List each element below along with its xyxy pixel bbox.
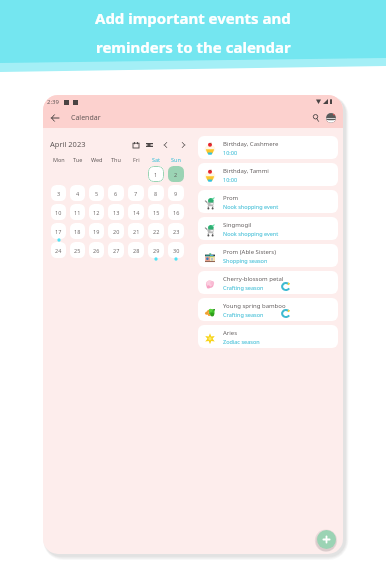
staticText: 3 [57,190,61,197]
staticText: Nook shopping event [223,230,279,237]
button[interactable]: 9 [168,185,184,201]
button[interactable]: 11 [70,204,85,220]
staticText: 30 [173,247,180,254]
staticText: 4 [76,190,80,197]
staticText: 21 [133,228,140,235]
staticText: Nook shopping event [223,203,279,210]
staticText: Calendar [71,113,101,123]
button[interactable]: 12 [89,204,104,220]
staticText: 25 [74,247,81,254]
staticText: Thu [111,156,121,163]
button[interactable]: 16 [168,204,184,220]
staticText: Birthday, Cashmere [223,140,279,148]
staticText: 20 [113,228,120,235]
staticText: 28 [133,247,140,254]
staticText: 22 [153,228,160,235]
staticText: 19 [93,228,100,235]
button[interactable]: Profile [326,113,336,123]
button[interactable]: 22 [148,223,164,239]
staticText: reminders to the calendar [96,37,291,57]
button[interactable]: List view [144,139,155,150]
button[interactable]: 26 [89,242,104,258]
staticText: Birthday, Tammi [223,167,269,175]
button[interactable]: 7 [128,185,144,201]
staticText: April 2023 [50,139,86,149]
button[interactable]: 25 [70,242,85,258]
button[interactable]: Cherry-blossom petal [198,271,338,294]
button[interactable]: Birthday, Cashmere [198,136,338,159]
staticText: Fri [133,156,140,163]
button[interactable]: Previous month [160,139,171,150]
button[interactable]: Singmogil [198,217,338,240]
button[interactable]: 5 [89,185,104,201]
button[interactable]: Month view [130,139,141,150]
staticText: 2:39 [47,98,59,106]
button[interactable]: 19 [89,223,104,239]
button[interactable]: Next month [178,139,189,150]
staticText: 2 [174,171,178,178]
staticText: Shopping season [223,257,268,264]
staticText: 11 [74,209,81,216]
staticText: 16 [173,209,180,216]
staticText: Prom (Able Sisters) [223,248,277,256]
button[interactable]: Back [48,111,62,125]
button[interactable]: 15 [148,204,164,220]
button[interactable]: 4 [70,185,85,201]
button[interactable]: 17 [51,223,66,239]
button[interactable]: Birthday, Tammi [198,163,338,186]
staticText: 10:00 [223,176,238,183]
button[interactable]: Prom [198,190,338,213]
staticText: 18 [74,228,81,235]
button[interactable]: 29 [148,242,164,258]
staticText: Sat [152,156,161,163]
button[interactable]: 1 [148,166,164,182]
button[interactable]: 20 [108,223,124,239]
staticText: Prom [223,194,239,202]
button[interactable]: 21 [128,223,144,239]
staticText: Cherry-blossom petal [223,275,284,283]
staticText: Tue [73,156,83,163]
staticText: Sun [171,156,181,163]
staticText: Singmogil [223,221,252,229]
button[interactable]: Add event [317,530,336,549]
button[interactable]: 14 [128,204,144,220]
button[interactable]: 18 [70,223,85,239]
staticText: 8 [154,190,158,197]
staticText: 23 [173,228,180,235]
button[interactable]: Young spring bamboo [198,298,338,321]
button[interactable]: 10 [51,204,66,220]
button[interactable]: 8 [148,185,164,201]
button[interactable]: 24 [51,242,66,258]
staticText: 14 [133,209,140,216]
button[interactable]: 2 [168,166,184,182]
staticText: 10:00 [223,149,238,156]
staticText: 12 [93,209,100,216]
button[interactable]: Aries [198,325,338,348]
staticText: 24 [55,247,62,254]
staticText: 27 [113,247,120,254]
staticText: Zodiac season [223,338,260,345]
staticText: 10 [55,209,62,216]
staticText: 7 [134,190,138,197]
staticText: 5 [95,190,99,197]
button[interactable]: 27 [108,242,124,258]
button[interactable]: 6 [108,185,124,201]
staticText: 29 [153,247,160,254]
staticText: Aries [223,329,238,337]
staticText: Add important events and [95,8,291,28]
staticText: Young spring bamboo [223,302,286,310]
button[interactable]: Prom (Able Sisters) [198,244,338,267]
staticText: Wed [91,156,103,163]
staticText: 17 [55,228,62,235]
button[interactable]: 30 [168,242,184,258]
staticText: Crafting season [223,284,264,291]
staticText: 13 [113,209,120,216]
button[interactable]: 28 [128,242,144,258]
staticText: 1 [154,171,158,178]
button[interactable]: 23 [168,223,184,239]
button[interactable]: Search [310,112,322,124]
button[interactable]: 3 [51,185,66,201]
staticText: 9 [174,190,178,197]
button[interactable]: 13 [108,204,124,220]
staticText: 15 [153,209,160,216]
